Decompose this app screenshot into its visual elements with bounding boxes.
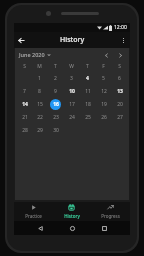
staticText: 15	[37, 101, 43, 108]
staticText: 12:00	[114, 24, 127, 31]
staticText: M	[37, 63, 42, 70]
staticText: 7	[23, 88, 26, 95]
staticText: 2	[54, 75, 57, 82]
button[interactable]: Recents	[98, 222, 110, 234]
staticText: 27	[117, 114, 123, 121]
staticText: Practice	[25, 213, 42, 219]
staticText: 20	[117, 101, 123, 108]
button[interactable]: 30	[50, 125, 61, 136]
staticText: 16	[53, 101, 59, 108]
button[interactable]: 13	[114, 86, 125, 97]
staticText: 23	[53, 114, 59, 121]
staticText: June 2020	[19, 51, 45, 58]
button[interactable]: 18	[82, 99, 93, 110]
staticText: 29	[37, 127, 43, 134]
button[interactable]: 20	[114, 99, 125, 110]
staticText: Progress	[101, 213, 120, 219]
staticText: S	[23, 63, 26, 70]
staticText: T	[54, 63, 57, 70]
button[interactable]: 6	[114, 73, 125, 84]
button[interactable]: 29	[34, 125, 45, 136]
button[interactable]: 19	[98, 99, 109, 110]
button[interactable]: Progress	[91, 202, 130, 221]
staticText: 1	[38, 75, 41, 82]
staticText: 17	[69, 101, 75, 108]
button[interactable]: 3	[66, 73, 77, 84]
button[interactable]: 24	[66, 112, 77, 123]
staticText: W	[69, 63, 74, 70]
button[interactable]: More options	[116, 33, 130, 47]
button[interactable]: 28	[19, 125, 30, 136]
button[interactable]: 27	[114, 112, 125, 123]
staticText: 11	[85, 88, 91, 95]
button[interactable]: June 2020	[19, 51, 51, 58]
button[interactable]: Next month	[115, 50, 125, 60]
button[interactable]: 12	[98, 86, 109, 97]
button[interactable]: 7	[19, 86, 30, 97]
button[interactable]: 16	[50, 99, 61, 110]
staticText: 5	[102, 75, 105, 82]
button[interactable]: 15	[34, 99, 45, 110]
button[interactable]: Home	[66, 222, 78, 234]
button[interactable]: 5	[98, 73, 109, 84]
button[interactable]: Back	[34, 222, 46, 234]
button[interactable]: 9	[50, 86, 61, 97]
staticText: 19	[101, 101, 107, 108]
button[interactable]: Previous month	[101, 50, 111, 60]
staticText: 18	[85, 101, 91, 108]
staticText: History	[60, 35, 85, 45]
staticText: History	[64, 213, 80, 219]
staticText: F	[102, 63, 105, 70]
button[interactable]: 4	[82, 73, 93, 84]
button[interactable]: 23	[50, 112, 61, 123]
button[interactable]: Back	[14, 33, 28, 47]
button[interactable]: History	[52, 202, 91, 221]
button[interactable]: 25	[82, 112, 93, 123]
button[interactable]: 17	[66, 99, 77, 110]
staticText: 13	[117, 88, 123, 95]
staticText: 14	[22, 101, 28, 108]
staticText: 8	[38, 88, 41, 95]
staticText: T	[86, 63, 89, 70]
button[interactable]: Practice	[14, 202, 52, 221]
staticText: S	[118, 63, 121, 70]
button[interactable]: 11	[82, 86, 93, 97]
staticText: 3	[70, 75, 73, 82]
staticText: 12	[101, 88, 107, 95]
button[interactable]: 2	[50, 73, 61, 84]
staticText: 25	[85, 114, 91, 121]
button[interactable]: 22	[34, 112, 45, 123]
button[interactable]: 26	[98, 112, 109, 123]
staticText: 6	[118, 75, 121, 82]
staticText: 10	[69, 88, 75, 95]
staticText: 9	[54, 88, 57, 95]
staticText: 28	[22, 127, 28, 134]
button[interactable]: 10	[66, 86, 77, 97]
button[interactable]: 14	[19, 99, 30, 110]
staticText: 26	[101, 114, 107, 121]
staticText: 22	[37, 114, 43, 121]
staticText: 4	[86, 75, 89, 82]
button[interactable]: 1	[34, 73, 45, 84]
staticText: 30	[53, 127, 59, 134]
button[interactable]: 21	[19, 112, 30, 123]
staticText: 24	[69, 114, 75, 121]
button[interactable]: 8	[34, 86, 45, 97]
staticText: 21	[22, 114, 28, 121]
